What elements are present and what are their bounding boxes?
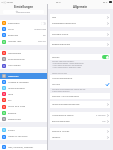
staticText: 09:41 — [56, 1, 61, 4]
button[interactable]: Einstellungen — [3, 10, 44, 14]
button[interactable]: Datenschutz — [0, 116, 47, 122]
staticText: Kontrollzentrum — [8, 58, 25, 61]
button[interactable]: Touch ID & Code — [0, 103, 47, 110]
button[interactable]: Flugmodus ein/aus — [41, 22, 46, 25]
button[interactable]: Töne — [0, 91, 47, 97]
button[interactable]: Anzeige & Helligkeit — [0, 79, 47, 85]
staticText: iTunes & App Store — [8, 135, 28, 138]
staticText: Bluetooth — [8, 34, 19, 37]
staticText: Batterie — [8, 112, 17, 115]
button[interactable]: Kontrollzentrum — [0, 56, 47, 62]
staticText: Einschränkungen — [52, 120, 70, 123]
staticText: Allgemein — [8, 75, 19, 78]
staticText: •••○○ Carrier — [1, 1, 14, 4]
staticText: Info — [52, 16, 57, 19]
button[interactable]: Tastatur — [50, 134, 110, 140]
button[interactable]: Allgemein — [0, 73, 47, 79]
staticText: Mobiles Netz — [8, 40, 22, 43]
staticText: Hintergrundaktualisierung — [52, 103, 80, 106]
staticText: Einstellungen — [14, 5, 34, 9]
staticText: Spotlight-Suche — [52, 33, 69, 36]
staticText: Anzeige & Helligkeit — [8, 81, 29, 84]
staticText: Datenschutz — [8, 118, 21, 121]
staticText: Sperren: An/Ausschaltung — [52, 95, 79, 98]
staticText: 96 % — [103, 1, 108, 4]
button[interactable]: Mail, Kontakte, Kalender — [0, 144, 47, 150]
staticText: Einstellungen — [18, 11, 31, 14]
staticText: Softwareaktualisierung — [52, 22, 76, 25]
staticText: Hintergrundbild — [8, 87, 25, 90]
staticText: Ausrichtungssperre — [52, 77, 73, 80]
button[interactable]: Info — [50, 14, 110, 20]
button[interactable]: Flugmodus — [0, 20, 47, 26]
button[interactable]: Hintergrundaktualisierung — [50, 101, 110, 108]
staticText: WLAN — [8, 28, 15, 31]
staticText: Flugmodus — [8, 22, 20, 25]
staticText: Töne — [8, 93, 13, 96]
button[interactable]: iCloud — [0, 127, 47, 133]
button[interactable]: Gesten ein/aus — [102, 55, 109, 59]
button[interactable]: Einschränkungen — [50, 118, 110, 124]
staticText: • Zusammenziehen: Home-Bildschirm — [52, 62, 84, 64]
staticText: Mitteilungen — [8, 52, 22, 55]
staticText: Kein SIM — [38, 40, 46, 43]
staticText: Allgemein — [73, 5, 88, 9]
button[interactable]: Mitteilungen — [0, 50, 47, 56]
staticText: Gesten — [52, 56, 60, 59]
button[interactable]: Batterie — [0, 110, 47, 116]
button[interactable]: Bedienungshilfen — [50, 41, 110, 47]
staticText: Ausrichtung sperren. — [52, 90, 70, 92]
staticText: Mit vier oder fünf Fingern: — [52, 60, 75, 62]
staticText: • Nach links/rechts: zwischen Apps — [52, 66, 81, 68]
staticText: Ein — [43, 34, 46, 37]
button[interactable]: Mobiles Netz — [0, 38, 47, 45]
button[interactable]: Sperren: An/Ausschaltung — [50, 93, 110, 99]
staticText: Aus — [102, 120, 106, 123]
staticText: Ludgerstraße — [34, 28, 46, 31]
staticText: iCloud — [8, 129, 15, 132]
button[interactable]: Spotlight-Suche — [50, 31, 110, 37]
staticText: Bedienungshilfen — [52, 43, 71, 46]
staticText: Nicht stören — [8, 64, 21, 67]
staticText: • Nach oben streichen: Multitasking — [52, 64, 82, 66]
button[interactable]: Bluetooth — [0, 32, 47, 38]
staticText: Mit dem Kontrollzentrum kannst du die — [52, 88, 86, 90]
button[interactable]: Ton aus — [50, 81, 110, 88]
staticText: 2 Minuten — [96, 114, 106, 117]
button[interactable]: iTunes & App Store — [0, 133, 47, 140]
button[interactable]: Ausrichtungssperre — [50, 75, 110, 81]
button[interactable]: Datum & Uhrzeit — [50, 128, 110, 134]
staticText: Tastatur — [52, 136, 61, 139]
button[interactable]: WLAN — [0, 26, 47, 32]
staticText: SEITENSCHALTER: — [52, 72, 68, 74]
button[interactable]: Gesten — [50, 54, 110, 60]
staticText: Datum & Uhrzeit — [52, 130, 70, 133]
staticText: Touch ID & Code — [8, 105, 26, 108]
staticText: Ton aus — [52, 83, 60, 86]
staticText: Siri — [8, 99, 12, 102]
button[interactable]: Softwareaktualisierung — [50, 20, 110, 27]
button[interactable]: Automatische Sperre — [50, 112, 110, 118]
staticText: Mail, Kontakte, Kalender — [8, 146, 34, 149]
button[interactable]: Hintergrundbild — [0, 85, 47, 91]
button[interactable]: Siri — [0, 97, 47, 103]
button[interactable]: Nicht stören — [0, 62, 47, 69]
staticText: Automatische Sperre — [52, 114, 74, 117]
